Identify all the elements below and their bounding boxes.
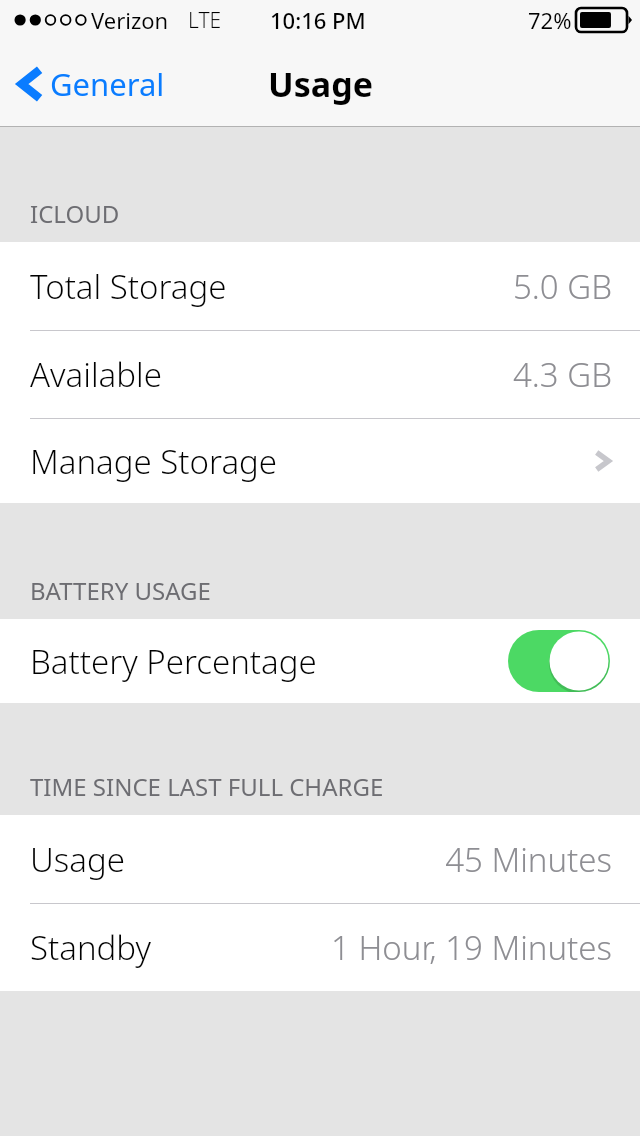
staticText: Standby [30,925,151,970]
button[interactable]: General [0,40,177,127]
staticText: BATTERY USAGE [30,574,211,607]
staticText: 1 Hour, 19 Minutes [331,925,612,970]
button[interactable]: Battery Percentage toggle, on [508,630,610,692]
staticText: Battery Percentage [30,639,317,684]
staticText: Usage [30,837,125,882]
button[interactable]: Available [0,331,640,418]
staticText: Manage Storage [30,439,278,484]
staticText: Available [30,352,162,397]
staticText: Verizon [91,5,169,35]
staticText: ICLOUD [30,197,120,230]
staticText: Total Storage [30,264,227,309]
staticText: Usage [268,61,373,107]
staticText: General [50,63,165,105]
staticText: 10:16 PM [270,5,366,35]
staticText: 45 Minutes [445,837,612,882]
staticText: 4.3 GB [512,352,612,397]
staticText: 5.0 GB [512,264,612,309]
button[interactable]: Total Storage [0,242,640,330]
button[interactable]: Usage [0,815,640,903]
staticText: LTE [188,6,222,35]
other: Open Manage Storage [594,446,612,476]
staticText: 72% [528,5,572,35]
button[interactable]: Standby [0,904,640,991]
staticText: TIME SINCE LAST FULL CHARGE [30,770,384,803]
button[interactable]: Manage Storage [0,419,640,503]
